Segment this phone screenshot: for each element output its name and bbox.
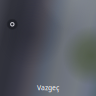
button[interactable]: Close xyxy=(4,16,20,32)
button[interactable]: Vazgeç xyxy=(0,83,96,96)
staticText: Vazgeç xyxy=(37,83,59,92)
